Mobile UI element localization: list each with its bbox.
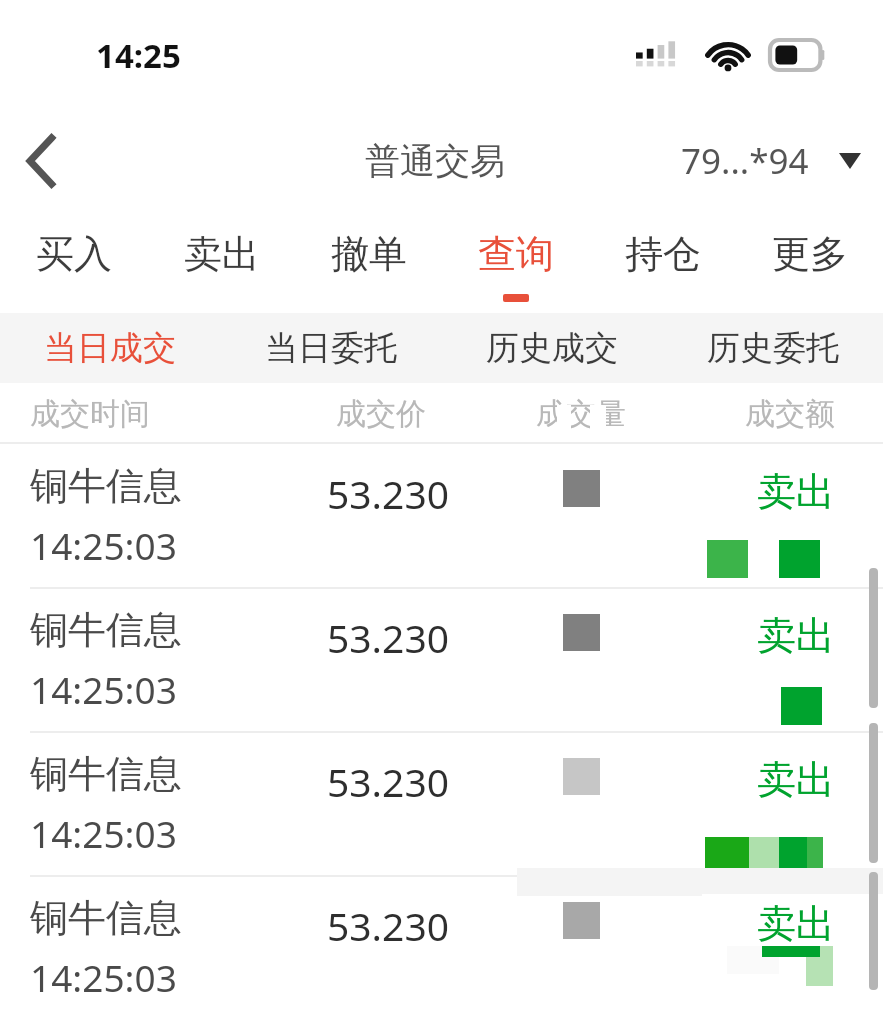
button[interactable]: 卖出 <box>148 216 295 313</box>
button[interactable]: Back <box>0 119 84 203</box>
staticText: 成交时间 <box>30 395 150 433</box>
staticText: 铜牛信息 <box>30 462 182 510</box>
staticText: 14:25:03 <box>30 952 177 1002</box>
staticText: 历史委托 <box>707 327 839 369</box>
staticText: 53.230 <box>327 611 449 664</box>
staticText: 当日委托 <box>265 327 397 369</box>
button[interactable]: 买入 <box>0 216 148 313</box>
staticText: 卖出 <box>757 755 835 804</box>
staticText: 卖出 <box>757 611 835 660</box>
staticText: 当日成交 <box>44 327 176 369</box>
button[interactable]: 历史成交 <box>441 313 662 383</box>
button[interactable]: 铜牛信息 <box>0 589 883 731</box>
staticText: 卖出 <box>757 467 835 516</box>
staticText: 持仓 <box>625 230 701 278</box>
staticText: 买入 <box>36 230 112 278</box>
button[interactable]: 当日委托 <box>220 313 441 383</box>
staticText: 53.230 <box>327 755 449 808</box>
staticText: 铜牛信息 <box>30 894 182 942</box>
staticText: 79...*94 <box>681 137 809 185</box>
staticText: 普通交易 <box>365 139 505 183</box>
staticText: 14:25:03 <box>30 808 177 858</box>
staticText: 撤单 <box>331 230 407 278</box>
staticText: 成交额 <box>745 395 835 433</box>
staticText: 历史成交 <box>486 327 618 369</box>
staticText: 卖出 <box>184 230 260 278</box>
staticText: 更多 <box>772 230 848 278</box>
staticText: 14:25:03 <box>30 520 177 570</box>
staticText: 成交价 <box>336 395 426 433</box>
button[interactable]: 铜牛信息 <box>0 877 883 1019</box>
button[interactable]: 查询 <box>442 216 589 313</box>
button[interactable]: 铜牛信息 <box>0 733 883 875</box>
button[interactable]: 当日成交 <box>0 313 220 383</box>
staticText: 铜牛信息 <box>30 606 182 654</box>
staticText: 53.230 <box>327 899 449 952</box>
button[interactable]: 更多 <box>736 216 883 313</box>
staticText: 14:25 <box>96 33 181 78</box>
button[interactable]: 撤单 <box>295 216 442 313</box>
staticText: 铜牛信息 <box>30 750 182 798</box>
staticText: 卖出 <box>757 899 835 948</box>
staticText: 成交量 <box>536 395 626 433</box>
staticText: 14:25:03 <box>30 664 177 714</box>
staticText: 查询 <box>478 230 554 278</box>
button[interactable]: 79...*94 <box>681 137 861 185</box>
button[interactable]: 历史委托 <box>662 313 883 383</box>
button[interactable]: 持仓 <box>589 216 736 313</box>
staticText: 53.230 <box>327 467 449 520</box>
button[interactable]: 铜牛信息 <box>0 445 883 587</box>
